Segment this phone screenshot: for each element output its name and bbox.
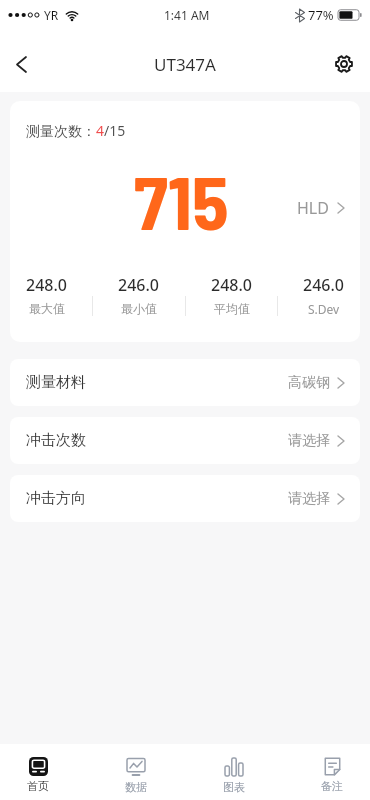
staticText: 图表: [223, 780, 245, 794]
staticText: 248.0: [26, 274, 67, 296]
staticText: HLD: [297, 197, 329, 219]
button[interactable]: [333, 53, 355, 75]
staticText: UT347A: [154, 53, 216, 76]
button[interactable]: [6, 49, 36, 79]
staticText: YR: [44, 7, 59, 23]
staticText: 715: [134, 155, 229, 245]
button[interactable]: HLD: [297, 197, 344, 219]
button[interactable]: 首页: [16, 744, 60, 800]
button[interactable]: 图表: [212, 744, 256, 800]
staticText: 最小值: [121, 301, 157, 316]
button[interactable]: 备注: [310, 744, 354, 800]
staticText: 测量次数：4/15: [26, 121, 126, 140]
button[interactable]: 冲击方向: [10, 475, 360, 522]
staticText: 248.0: [211, 274, 252, 296]
staticText: 测量材料: [26, 373, 86, 392]
staticText: 冲击次数: [26, 431, 86, 450]
staticText: 数据: [125, 780, 147, 794]
staticText: 平均值: [214, 301, 250, 316]
staticText: 请选择: [288, 490, 330, 508]
staticText: 246.0: [118, 274, 159, 296]
staticText: 最大值: [29, 301, 65, 316]
staticText: 备注: [321, 779, 343, 793]
staticText: 首页: [27, 779, 49, 793]
staticText: 冲击方向: [26, 489, 86, 508]
staticText: 高碳钢: [288, 374, 330, 392]
staticText: 1:41 AM: [164, 7, 210, 23]
button[interactable]: 数据: [114, 744, 158, 800]
staticText: 请选择: [288, 432, 330, 450]
staticText: 246.0: [303, 274, 344, 296]
staticText: 77%: [308, 6, 334, 24]
button[interactable]: 冲击次数: [10, 417, 360, 464]
button[interactable]: 测量材料: [10, 359, 360, 406]
staticText: S.Dev: [308, 301, 340, 317]
